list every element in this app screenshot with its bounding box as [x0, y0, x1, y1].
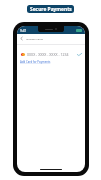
staticText: Add Card for Payments	[20, 60, 51, 64]
staticText: Secure Payments	[30, 6, 72, 13]
staticText: XXXX - XXXX - XXXX - 1234	[27, 52, 69, 57]
button[interactable]: Secure Payments	[27, 5, 74, 13]
staticText: 9:41	[20, 29, 27, 33]
button[interactable]: Add Card for Payments	[17, 60, 51, 64]
button[interactable]: XXXX - XXXX - XXXX - 1234	[17, 51, 85, 58]
staticText: Manage Cards	[26, 37, 43, 40]
button[interactable]: Back	[17, 34, 26, 43]
